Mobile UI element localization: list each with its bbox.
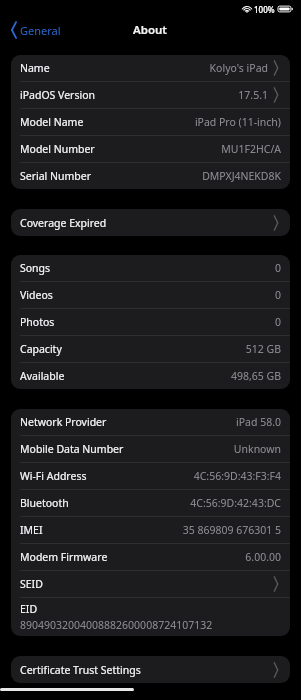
staticText: Model Name — [20, 115, 84, 129]
staticText: Network Provider — [20, 415, 107, 429]
staticText: MU1F2HC/A — [221, 142, 281, 156]
staticText: iPad Pro (11-inch) — [194, 115, 281, 129]
button[interactable]: Wi-Fi Address — [11, 463, 290, 489]
staticText: IMEI — [20, 523, 43, 537]
button[interactable]: Network Provider — [11, 409, 290, 435]
button[interactable]: Songs — [11, 255, 290, 281]
staticText: 0 — [274, 315, 281, 329]
staticText: Mobile Data Number — [20, 442, 124, 456]
staticText: iPadOS Version — [20, 88, 96, 102]
staticText: Available — [20, 369, 65, 383]
button[interactable]: iPadOS Version — [11, 82, 290, 108]
staticText: Capacity — [20, 342, 62, 356]
staticText: Bluetooth — [20, 496, 69, 510]
button[interactable]: Capacity — [11, 336, 290, 362]
staticText: 17.5.1 — [238, 88, 268, 102]
button[interactable]: Serial Number — [11, 163, 290, 189]
staticText: 6.00.00 — [245, 550, 281, 564]
other: Battery full — [278, 5, 293, 13]
staticText: iPad 58.0 — [236, 415, 281, 429]
staticText: DMPXJ4NEKD8K — [202, 169, 281, 183]
button[interactable]: Model Name — [11, 109, 290, 135]
staticText: SEID — [20, 577, 43, 591]
staticText: Songs — [20, 261, 51, 275]
button[interactable]: Name — [11, 55, 290, 81]
staticText: Wi-Fi Address — [20, 469, 87, 483]
staticText: 4C:56:9D:43:F3:F4 — [193, 469, 281, 483]
button[interactable]: Certificate Trust Settings — [11, 656, 290, 683]
staticText: Model Number — [20, 142, 95, 156]
staticText: 512 GB — [245, 342, 281, 356]
button[interactable]: Photos — [11, 309, 290, 335]
button[interactable]: SEID — [11, 571, 290, 597]
button[interactable]: Videos — [11, 282, 290, 308]
button[interactable]: General — [0, 18, 67, 42]
staticText: About — [133, 22, 168, 38]
staticText: General — [20, 23, 61, 38]
button[interactable]: Available — [11, 363, 290, 389]
staticText: Serial Number — [20, 169, 92, 183]
button[interactable]: Mobile Data Number — [11, 436, 290, 462]
staticText: Modem Firmware — [20, 550, 108, 564]
staticText: Coverage Expired — [20, 216, 107, 230]
staticText: Certificate Trust Settings — [20, 663, 141, 677]
staticText: Videos — [20, 288, 53, 302]
staticText: 35 869809 676301 5 — [182, 523, 281, 537]
staticText: Kolyo's iPad — [209, 61, 268, 75]
staticText: Name — [20, 61, 50, 75]
staticText: 89049032004008882600008724107132 — [20, 618, 213, 632]
staticText: EID — [20, 602, 38, 616]
button[interactable]: Bluetooth — [11, 490, 290, 516]
staticText: Photos — [20, 315, 55, 329]
staticText: 100% — [254, 4, 275, 15]
staticText: 498,65 GB — [230, 369, 281, 383]
button[interactable]: Modem Firmware — [11, 544, 290, 570]
button[interactable]: Coverage Expired — [11, 209, 290, 236]
other: Wi-Fi signal — [242, 5, 252, 13]
button[interactable]: Model Number — [11, 136, 290, 162]
staticText: 4C:56:9D:42:43:DC — [190, 496, 281, 510]
button[interactable]: EID — [11, 598, 290, 636]
staticText: Unknown — [233, 442, 281, 456]
button[interactable]: IMEI — [11, 517, 290, 543]
staticText: 0 — [274, 288, 281, 302]
staticText: 0 — [274, 261, 281, 275]
